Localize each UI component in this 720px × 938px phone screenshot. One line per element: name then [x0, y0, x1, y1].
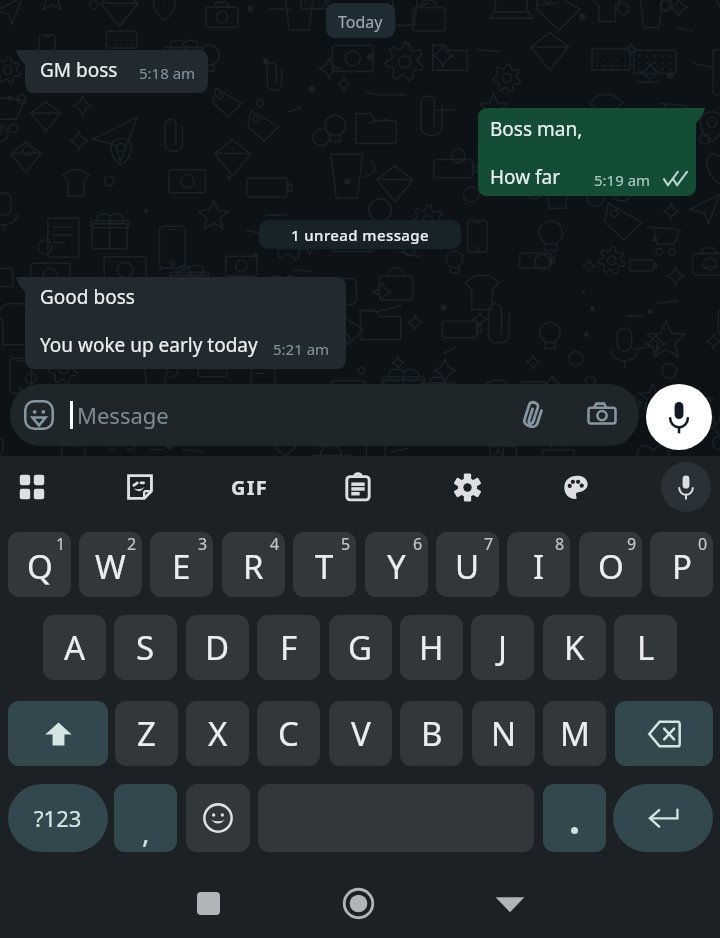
button[interactable]: Apps — [8, 463, 56, 511]
button[interactable]: Boss man, — [478, 108, 705, 196]
button[interactable]: Q — [8, 532, 71, 597]
button[interactable]: Voice input — [661, 462, 711, 512]
staticText: I — [533, 544, 545, 589]
button[interactable]: Symbols — [8, 784, 108, 852]
button[interactable]: F — [257, 615, 320, 680]
button[interactable]: GIF — [221, 465, 277, 509]
staticText: F — [280, 625, 298, 670]
staticText: 1 unread message — [291, 225, 430, 245]
button[interactable]: C — [257, 701, 320, 766]
button[interactable]: Comma — [114, 784, 177, 852]
staticText: P — [672, 544, 692, 589]
button[interactable]: Back — [488, 881, 532, 925]
staticText: 9 — [627, 533, 637, 555]
staticText: 5 — [341, 533, 351, 555]
staticText: 0 — [698, 533, 708, 555]
button[interactable]: Themes — [552, 463, 600, 511]
staticText: T — [315, 544, 334, 589]
button[interactable]: I — [507, 532, 570, 597]
staticText: Y — [387, 544, 406, 589]
staticText: Q — [27, 544, 53, 589]
button[interactable]: Message — [10, 384, 639, 446]
button[interactable]: H — [400, 615, 463, 680]
button[interactable]: J — [471, 615, 534, 680]
button[interactable]: T — [293, 532, 356, 597]
staticText: GIF — [231, 474, 268, 501]
staticText: W — [95, 544, 126, 589]
staticText: GM boss — [40, 57, 118, 83]
button[interactable]: O — [579, 532, 642, 597]
button[interactable]: P — [650, 532, 713, 597]
button[interactable]: 1 unread message — [259, 220, 461, 249]
button[interactable]: GM boss — [16, 50, 208, 93]
staticText: X — [208, 711, 228, 756]
staticText: , — [142, 813, 150, 851]
button[interactable]: G — [329, 615, 392, 680]
staticText: 7 — [484, 533, 494, 555]
button[interactable]: E — [150, 532, 213, 597]
staticText: B — [421, 711, 443, 756]
staticText: O — [598, 544, 624, 589]
button[interactable]: Shift — [8, 701, 108, 766]
button[interactable]: Settings — [443, 463, 491, 511]
button[interactable]: V — [329, 701, 392, 766]
button[interactable]: Enter — [613, 784, 713, 852]
staticText: E — [172, 544, 191, 589]
staticText: H — [419, 625, 444, 670]
staticText: V — [351, 711, 371, 756]
button[interactable]: X — [186, 701, 249, 766]
button[interactable]: Backspace — [615, 701, 713, 766]
button[interactable]: Home — [336, 881, 380, 925]
staticText: 3 — [198, 533, 208, 555]
button[interactable]: Recent apps — [186, 881, 230, 925]
staticText: M — [560, 711, 590, 756]
button[interactable]: A — [43, 615, 106, 680]
staticText: L — [637, 625, 655, 670]
button[interactable]: R — [222, 532, 285, 597]
staticText: R — [243, 544, 264, 589]
staticText: D — [205, 625, 230, 670]
staticText: U — [455, 544, 480, 589]
staticText: G — [348, 625, 373, 670]
button[interactable]: Emoji — [186, 784, 250, 852]
button[interactable]: Record voice message — [646, 384, 712, 450]
staticText: 8 — [555, 533, 565, 555]
staticText: 5:18 am — [139, 63, 196, 83]
staticText: 5:21 am — [273, 339, 330, 359]
staticText: K — [564, 625, 585, 670]
staticText: 6 — [413, 533, 423, 555]
staticText: 2 — [127, 533, 137, 555]
button[interactable]: L — [614, 615, 677, 680]
button[interactable]: W — [79, 532, 142, 597]
button[interactable]: B — [400, 701, 463, 766]
button[interactable]: N — [472, 701, 535, 766]
button[interactable]: Stickers — [116, 463, 164, 511]
button[interactable]: Today — [326, 3, 395, 38]
button[interactable]: D — [186, 615, 249, 680]
button[interactable]: S — [114, 615, 177, 680]
button[interactable]: M — [543, 701, 606, 766]
staticText: You woke up early today — [40, 332, 258, 358]
button[interactable]: Good boss — [16, 277, 346, 369]
staticText: A — [64, 625, 86, 670]
staticText: ?123 — [34, 803, 82, 833]
staticText: Today — [338, 11, 383, 33]
staticText: Message — [77, 400, 169, 430]
staticText: Good boss — [40, 284, 135, 310]
staticText: 1 — [56, 533, 66, 555]
staticText: C — [278, 711, 299, 756]
button[interactable]: U — [436, 532, 499, 597]
button[interactable]: Y — [365, 532, 428, 597]
button[interactable]: Clipboard — [334, 463, 382, 511]
staticText: N — [491, 711, 517, 756]
button[interactable]: Period — [543, 784, 606, 852]
button[interactable]: K — [543, 615, 606, 680]
staticText: S — [136, 625, 155, 670]
staticText: Z — [137, 711, 156, 756]
staticText: 4 — [270, 533, 280, 555]
staticText: How far — [490, 164, 561, 190]
staticText: J — [498, 625, 508, 670]
staticText: 5:19 am — [594, 170, 651, 190]
button[interactable]: Z — [115, 701, 178, 766]
